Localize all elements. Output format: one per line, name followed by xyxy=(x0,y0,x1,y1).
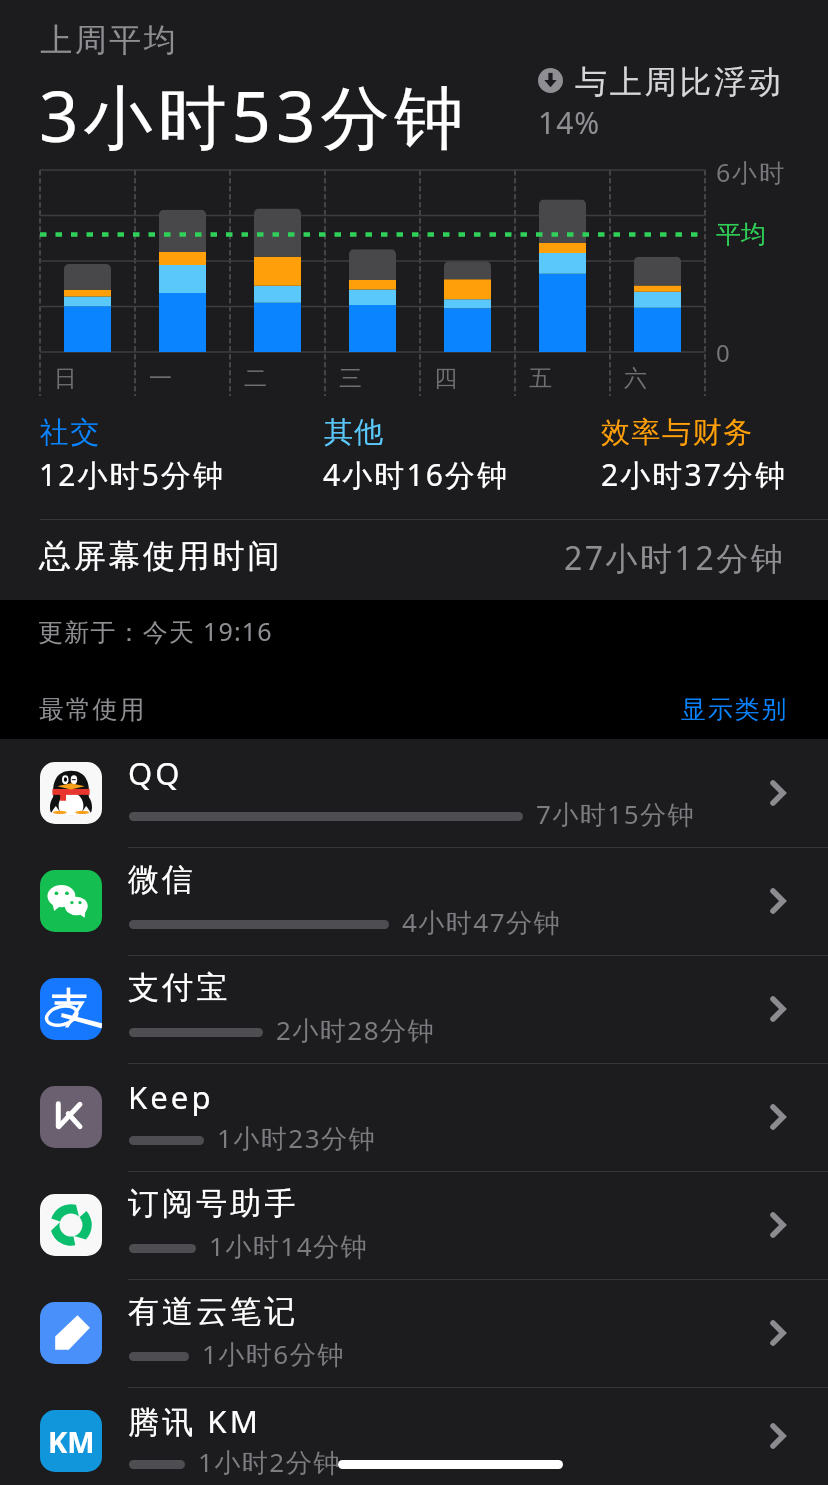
staticText: 三 xyxy=(339,364,362,393)
staticText: 微信 xyxy=(128,860,197,899)
staticText: 平均 xyxy=(716,219,766,250)
button[interactable]: Keep xyxy=(0,1063,828,1171)
staticText: 五 xyxy=(529,364,552,393)
button[interactable]: KM xyxy=(0,1387,828,1485)
staticText: 3小时53分钟 xyxy=(39,68,469,162)
staticText: 1小时23分钟 xyxy=(217,1120,377,1156)
staticText: 1小时2分钟 xyxy=(198,1444,341,1480)
staticText: 其他 xyxy=(323,414,384,451)
button[interactable]: 显示类别 xyxy=(675,688,795,731)
button[interactable]: 其他 xyxy=(323,414,510,455)
button[interactable]: 总屏幕使用时间 xyxy=(0,520,828,600)
staticText: 6小时 xyxy=(716,155,786,189)
staticText: 四 xyxy=(434,364,457,393)
button[interactable]: 社交 xyxy=(39,414,226,455)
other: Open 支付宝 details xyxy=(770,996,786,1022)
staticText: 二 xyxy=(244,364,267,393)
button[interactable]: QQ xyxy=(0,739,828,847)
staticText: 4小时16分钟 xyxy=(323,454,510,495)
staticText: 2小时37分钟 xyxy=(601,454,788,495)
other: Open 订阅号助手 details xyxy=(770,1212,786,1238)
staticText: 4小时47分钟 xyxy=(402,904,562,940)
staticText: 一 xyxy=(149,364,172,393)
staticText: 有道云笔记 xyxy=(128,1292,299,1331)
other: Open 微信 details xyxy=(770,888,786,914)
staticText: 12小时5分钟 xyxy=(39,454,226,495)
other: Open Keep details xyxy=(770,1104,786,1130)
staticText: 最常使用 xyxy=(39,694,147,725)
staticText: 上周平均 xyxy=(39,20,177,60)
staticText: Keep xyxy=(128,1076,214,1118)
staticText: 更新于：今天 19:16 xyxy=(38,614,273,648)
staticText: 14% xyxy=(538,102,601,143)
button[interactable]: 微信 xyxy=(0,847,828,955)
staticText: 效率与财务 xyxy=(601,414,754,451)
other: Open QQ details xyxy=(770,780,786,806)
other: Change from last week xyxy=(538,68,563,93)
staticText: 六 xyxy=(624,364,647,393)
button[interactable]: 效率与财务 xyxy=(601,414,788,455)
staticText: 7小时15分钟 xyxy=(536,796,696,832)
staticText: 2小时28分钟 xyxy=(276,1012,436,1048)
button[interactable]: 支付宝 xyxy=(0,955,828,1063)
staticText: KM xyxy=(48,1422,95,1461)
staticText: 社交 xyxy=(39,414,100,451)
staticText: 腾讯 KM xyxy=(128,1400,261,1442)
button[interactable]: 订阅号助手 xyxy=(0,1171,828,1279)
staticText: QQ xyxy=(128,752,183,794)
staticText: 27小时12分钟 xyxy=(564,536,786,580)
staticText: 1小时6分钟 xyxy=(202,1336,345,1372)
button[interactable]: 有道云笔记 xyxy=(0,1279,828,1387)
staticText: 支付宝 xyxy=(128,968,231,1007)
other: Open 腾讯 KM details xyxy=(770,1423,786,1449)
staticText: 1小时14分钟 xyxy=(209,1228,369,1264)
staticText: 订阅号助手 xyxy=(128,1184,299,1223)
staticText: 显示类别 xyxy=(681,694,789,725)
other: Open 有道云笔记 details xyxy=(770,1320,786,1346)
staticText: 总屏幕使用时间 xyxy=(39,536,282,576)
staticText: 0 xyxy=(716,336,730,369)
staticText: 日 xyxy=(54,364,77,393)
staticText: 与上周比浮动 xyxy=(575,62,784,102)
